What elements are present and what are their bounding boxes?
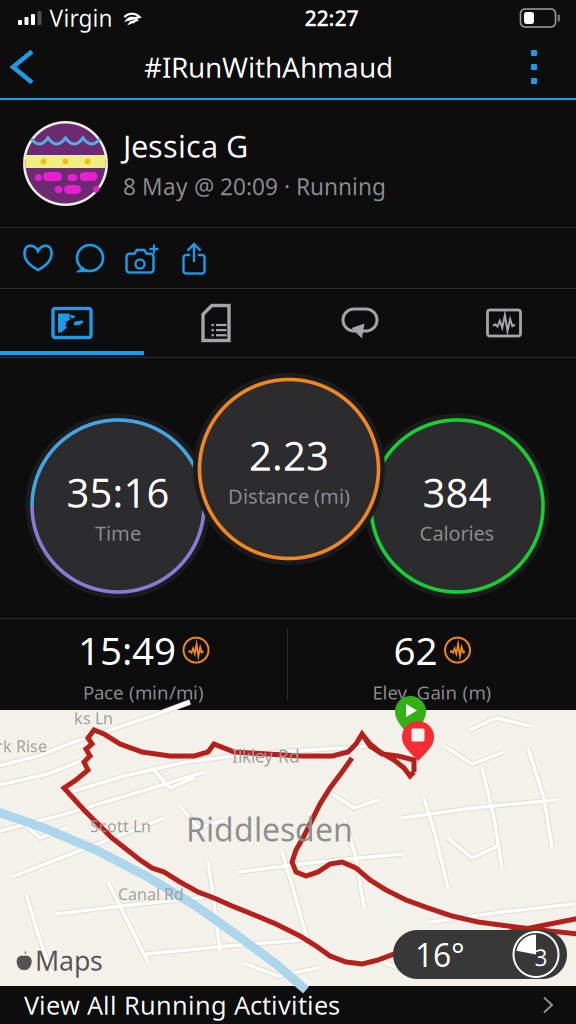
button[interactable]: Splits (144, 291, 288, 355)
staticText: 3 (534, 942, 547, 972)
staticText: Riddlesden (186, 808, 353, 850)
button[interactable]: Charts (432, 291, 576, 355)
button[interactable]: View All Running Activities (0, 986, 576, 1024)
button[interactable]: Map (0, 291, 144, 355)
staticText: Time (95, 520, 141, 546)
staticText: 16° (415, 933, 465, 976)
button[interactable]: More options (492, 36, 576, 98)
staticText: ks Ln (74, 707, 113, 729)
staticText: Ilkley Rd (232, 744, 300, 767)
staticText: Virgin (49, 3, 112, 33)
staticText: 62 (393, 624, 437, 676)
staticText: Jessica G (123, 126, 248, 166)
button[interactable]: Like (12, 228, 64, 288)
staticText: View All Running Activities (24, 988, 340, 1022)
staticText: Distance (mi) (228, 483, 350, 509)
staticText: #IRunWithAhmaud (144, 48, 393, 86)
staticText: rk Rise (0, 735, 47, 757)
staticText: 384 (422, 466, 491, 519)
staticText: 22:27 (304, 4, 358, 32)
staticText: 2.23 (249, 429, 329, 482)
button[interactable]: Share (168, 228, 220, 288)
staticText: Elev. Gain (m) (372, 680, 491, 705)
button[interactable]: Laps (288, 291, 432, 355)
button[interactable]: Add photo (116, 228, 168, 288)
staticText: 8 May @ 20:09 · Running (123, 171, 386, 201)
staticText: Maps (35, 943, 103, 978)
staticText: 15:49 (78, 624, 176, 676)
button[interactable]: Back (0, 36, 45, 98)
button[interactable]: Comment (64, 228, 116, 288)
staticText: Pace (min/mi) (83, 680, 204, 705)
staticText: Canal Rd (118, 883, 184, 905)
staticText: Calories (419, 520, 494, 546)
staticText: Scott Ln (90, 815, 151, 837)
staticText: 35:16 (66, 466, 169, 519)
